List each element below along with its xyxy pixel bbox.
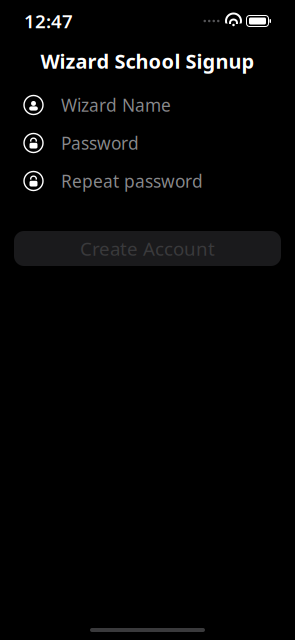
button[interactable]: Create Account bbox=[14, 231, 281, 266]
button[interactable]: Password bbox=[0, 124, 295, 162]
button[interactable]: Wizard Name bbox=[0, 86, 295, 124]
staticText: 12:47 bbox=[24, 9, 73, 33]
button[interactable]: Repeat password bbox=[0, 162, 295, 200]
staticText: Repeat password bbox=[61, 169, 203, 192]
staticText: Password bbox=[61, 131, 139, 154]
staticText: Wizard Name bbox=[61, 93, 171, 116]
staticText: Create Account bbox=[80, 236, 215, 261]
staticText: Wizard School Signup bbox=[40, 48, 254, 74]
